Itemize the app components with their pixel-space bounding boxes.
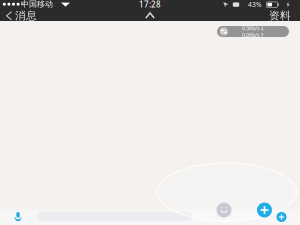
button[interactable]: Add xyxy=(276,212,286,222)
staticText: 0.0Kb/s↑ xyxy=(242,31,264,38)
staticText: 中国移动 xyxy=(21,0,53,9)
staticText: 17:28 xyxy=(139,0,161,10)
button[interactable]: Emoji xyxy=(216,202,231,217)
button[interactable]: Voice message xyxy=(13,211,23,221)
staticText: 消息 xyxy=(15,9,37,22)
staticText: 43% xyxy=(248,0,262,9)
button[interactable]: More xyxy=(257,202,272,217)
staticText: 0.3Kb/s↓ xyxy=(242,25,264,32)
button[interactable]: 消息 xyxy=(2,10,41,21)
staticText: 资料 xyxy=(269,9,291,22)
button[interactable]: 资料 xyxy=(264,10,296,21)
